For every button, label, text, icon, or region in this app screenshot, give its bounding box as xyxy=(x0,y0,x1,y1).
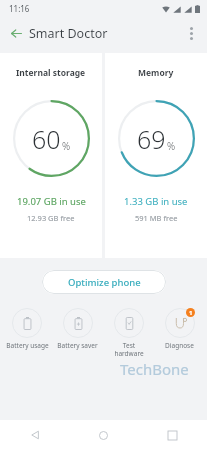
staticText: % xyxy=(62,139,71,153)
button[interactable]: Optimize phone xyxy=(42,270,166,294)
staticText: 1.33 GB in use xyxy=(124,195,188,208)
button[interactable]: Back xyxy=(6,23,26,43)
button[interactable]: Battery saver xyxy=(52,308,103,350)
button[interactable]: 1 xyxy=(154,308,205,350)
button[interactable]: Home xyxy=(69,420,138,450)
staticText: TechBone xyxy=(120,359,189,379)
staticText: Optimize phone xyxy=(68,276,141,289)
staticText: 69 xyxy=(137,122,166,156)
button[interactable]: More options xyxy=(180,22,202,44)
staticText: 19.07 GB in use xyxy=(17,195,86,208)
staticText: 591 MB free xyxy=(135,213,178,223)
button[interactable]: Memory xyxy=(105,53,207,258)
staticText: 1 xyxy=(189,309,193,317)
staticText: Smart Doctor xyxy=(29,25,108,42)
staticText: Diagnose xyxy=(165,341,194,350)
staticText: Test hardware xyxy=(114,341,144,358)
button[interactable]: Battery usage xyxy=(2,308,52,350)
staticText: % xyxy=(167,139,176,153)
staticText: Memory xyxy=(138,67,174,79)
button[interactable]: Internal storage xyxy=(0,53,102,258)
staticText: 11:16 xyxy=(9,3,30,14)
button[interactable]: Test hardware xyxy=(103,308,154,358)
button[interactable]: Back xyxy=(0,420,69,450)
staticText: 60 xyxy=(32,122,61,156)
button[interactable]: Recent apps xyxy=(138,420,207,450)
staticText: 12.93 GB free xyxy=(27,213,75,223)
staticText: Battery saver xyxy=(57,341,98,350)
staticText: Battery usage xyxy=(6,341,49,350)
staticText: Internal storage xyxy=(16,67,86,79)
